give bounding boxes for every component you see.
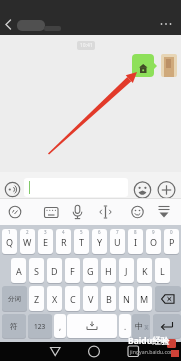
staticText: C xyxy=(70,293,76,305)
button[interactable]: T xyxy=(74,229,89,254)
button[interactable]: Q xyxy=(2,229,17,254)
staticText: Baidu经验 xyxy=(128,335,170,347)
staticText: W xyxy=(23,236,32,248)
staticText: jingyan.baidu.com xyxy=(130,348,175,355)
staticText: 中 xyxy=(135,321,143,331)
button[interactable]: O xyxy=(146,229,161,254)
staticText: K xyxy=(142,265,148,277)
button[interactable]: G xyxy=(83,258,98,283)
button[interactable] xyxy=(153,314,181,338)
staticText: 4 xyxy=(62,229,65,235)
staticText: A xyxy=(16,265,22,277)
staticText: 符 xyxy=(10,322,18,331)
button[interactable] xyxy=(6,203,24,221)
staticText: L xyxy=(160,265,165,277)
staticText: 123 xyxy=(34,322,46,331)
staticText: U xyxy=(114,236,121,248)
staticText: . xyxy=(124,321,127,332)
staticText: M xyxy=(140,293,149,305)
button[interactable]: , xyxy=(54,314,66,338)
staticText: 10:41 xyxy=(80,42,93,49)
staticText: 3 xyxy=(44,229,47,235)
staticText: 7 xyxy=(116,229,119,235)
button[interactable]: 分词 xyxy=(2,286,27,311)
button[interactable]: S xyxy=(29,258,44,283)
button[interactable] xyxy=(132,54,154,77)
staticText: J xyxy=(125,265,128,277)
button[interactable] xyxy=(97,203,114,221)
staticText: X xyxy=(52,293,58,305)
staticText: Z xyxy=(34,293,40,305)
button[interactable]: D xyxy=(47,258,62,283)
button[interactable]: 符 xyxy=(2,314,26,338)
button[interactable] xyxy=(24,178,128,197)
staticText: 2 xyxy=(26,229,29,235)
button[interactable]: P xyxy=(164,229,179,254)
button[interactable] xyxy=(157,181,176,200)
button[interactable] xyxy=(3,180,21,198)
staticText: B xyxy=(106,293,112,305)
button[interactable]: E xyxy=(38,229,53,254)
staticText: S xyxy=(34,265,39,277)
button[interactable]: Z xyxy=(29,286,44,311)
button[interactable]: W xyxy=(20,229,35,254)
staticText: 分词 xyxy=(8,295,21,303)
staticText: R xyxy=(61,236,67,248)
button[interactable]: C xyxy=(65,286,80,311)
button[interactable]: R xyxy=(56,229,71,254)
button[interactable] xyxy=(155,203,173,221)
staticText: T xyxy=(79,236,85,248)
staticText: Y xyxy=(97,236,103,248)
staticText: P xyxy=(169,236,175,248)
staticText: , xyxy=(59,321,62,332)
button[interactable] xyxy=(123,343,143,360)
button[interactable]: X xyxy=(47,286,62,311)
button[interactable]: V xyxy=(83,286,98,311)
button[interactable]: F xyxy=(65,258,80,283)
button[interactable] xyxy=(161,54,177,77)
button[interactable]: H xyxy=(101,258,116,283)
button[interactable]: M xyxy=(137,286,152,311)
button[interactable] xyxy=(69,203,86,221)
button[interactable]: . xyxy=(119,314,131,338)
staticText: 1 xyxy=(8,229,11,235)
staticText: 5 xyxy=(80,229,83,235)
staticText: D xyxy=(51,265,58,277)
staticText: I xyxy=(134,236,138,248)
button[interactable]: J xyxy=(119,258,134,283)
staticText: Q xyxy=(6,236,14,248)
button[interactable]: 中 xyxy=(132,314,150,338)
staticText: 6 xyxy=(98,229,101,235)
button[interactable]: A xyxy=(11,258,26,283)
button[interactable] xyxy=(45,343,65,360)
button[interactable] xyxy=(133,181,152,200)
staticText: V xyxy=(88,293,94,305)
staticText: F xyxy=(70,265,75,277)
staticText: 9 xyxy=(152,229,155,235)
button[interactable] xyxy=(155,286,181,311)
staticText: G xyxy=(87,265,94,277)
staticText: 8 xyxy=(134,229,137,235)
button[interactable] xyxy=(129,203,146,221)
button[interactable]: I xyxy=(128,229,143,254)
button[interactable]: 123 xyxy=(28,314,52,338)
button[interactable] xyxy=(84,343,104,360)
button[interactable]: Y xyxy=(92,229,107,254)
button[interactable]: L xyxy=(155,258,170,283)
staticText: 英 xyxy=(144,325,149,331)
button[interactable]: K xyxy=(137,258,152,283)
button[interactable] xyxy=(41,204,61,220)
button[interactable]: N xyxy=(119,286,134,311)
button[interactable] xyxy=(67,314,117,338)
staticText: O xyxy=(150,236,158,248)
button[interactable] xyxy=(155,14,177,32)
staticText: 0 xyxy=(170,229,173,235)
staticText: N xyxy=(123,293,130,305)
button[interactable] xyxy=(0,14,16,34)
button[interactable]: B xyxy=(101,286,116,311)
staticText: H xyxy=(105,265,112,277)
staticText: E xyxy=(43,236,49,248)
button[interactable]: U xyxy=(110,229,125,254)
